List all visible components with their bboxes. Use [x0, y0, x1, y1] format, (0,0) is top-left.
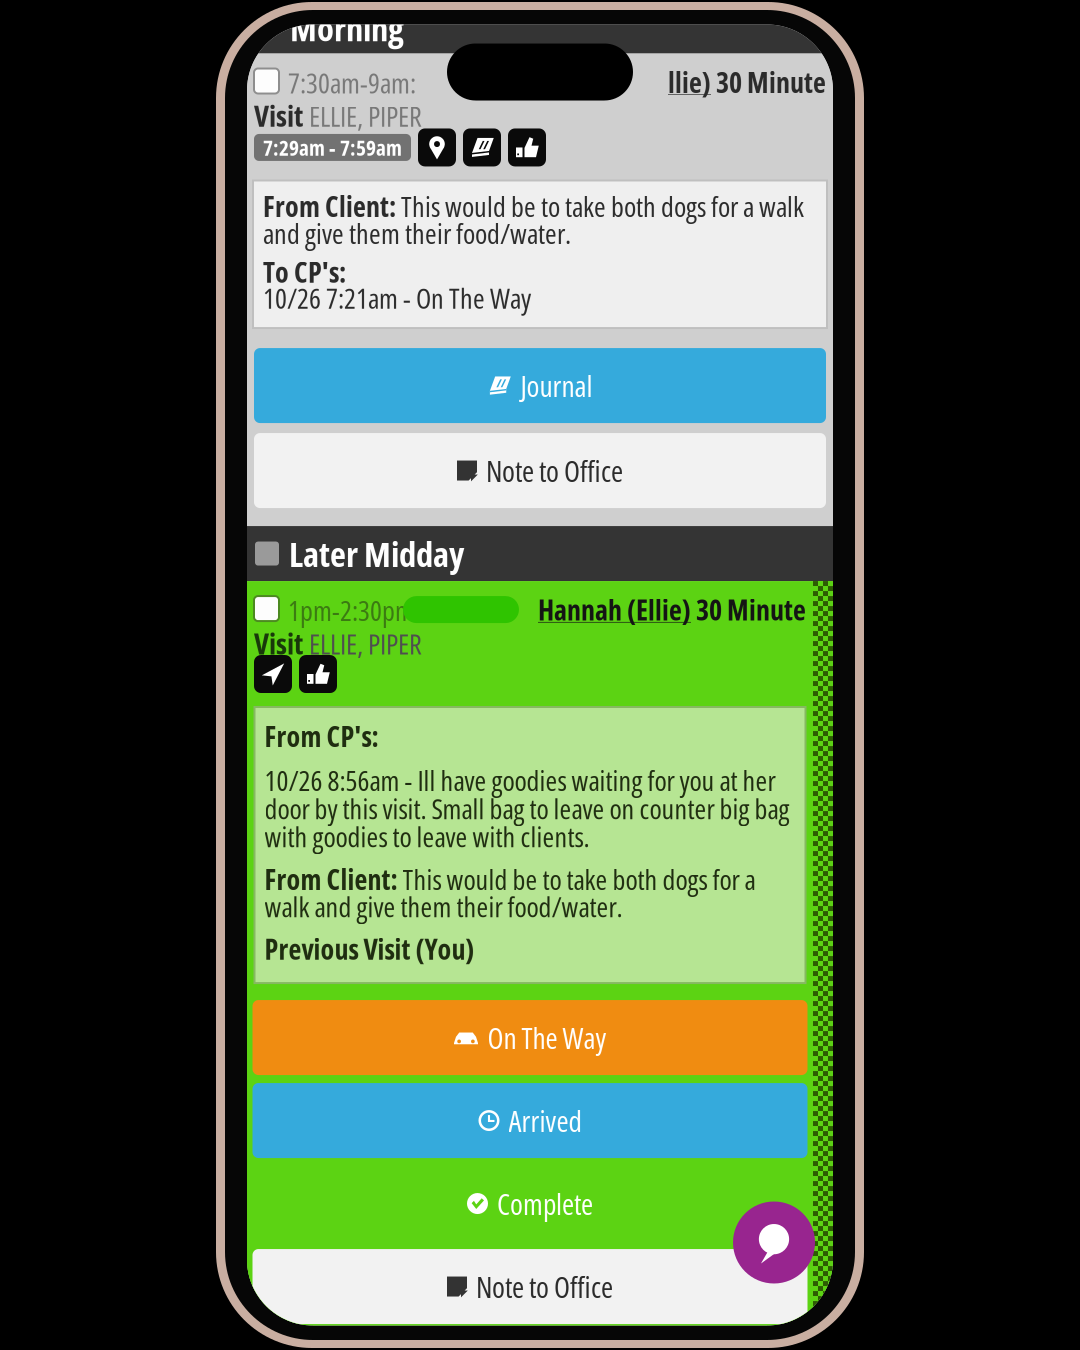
button[interactable]: Chat support [733, 1201, 815, 1283]
staticText: Journal [520, 366, 592, 405]
staticText: To CP's: [263, 253, 346, 291]
staticText: Complete [497, 1184, 593, 1223]
staticText: 1pm-2:30pm: [288, 591, 420, 629]
button[interactable]: On The Way [252, 1000, 807, 1075]
staticText: 7:29am - 7:59am [263, 133, 402, 162]
button[interactable]: Complete [252, 1166, 807, 1241]
staticText: Visit [254, 623, 303, 663]
staticText: From CP's: [264, 717, 378, 755]
staticText: From Client: This would be to take both … [264, 861, 755, 925]
button[interactable]: Journal [254, 348, 826, 423]
staticText: ELLIE, PIPER [309, 97, 422, 135]
staticText: Previous Visit (You) [264, 930, 474, 968]
staticText: 7:30am-9am: [288, 63, 421, 102]
button[interactable]: Open map [418, 128, 456, 166]
staticText: llie) 30 Minute [668, 63, 826, 101]
staticText: Visit [254, 95, 303, 135]
staticText: Note to Office [486, 451, 623, 490]
staticText: Arrived [508, 1101, 581, 1140]
button[interactable]: Arrived [252, 1083, 807, 1158]
staticText: Morning [290, 4, 404, 51]
button[interactable]: Note to Office [254, 433, 826, 508]
button[interactable]: Journal [463, 128, 501, 166]
staticText: ELLIE, PIPER [309, 624, 422, 663]
staticText: Note to Office [476, 1267, 613, 1306]
button[interactable]: Thumbs up [299, 655, 337, 693]
staticText: From Client: This would be to take both … [263, 187, 804, 252]
staticText: 10/26 8:56am - Ill have goodies waiting … [264, 761, 789, 856]
staticText: Later Midday [289, 530, 464, 577]
button[interactable]: Directions [254, 655, 292, 693]
staticText: 10/26 7:21am - On The Way [263, 279, 531, 317]
staticText: On The Way [487, 1018, 606, 1057]
staticText: Hannah (Ellie) 30 Minute [538, 591, 806, 628]
button[interactable]: Thumbs up [508, 128, 546, 166]
button[interactable]: Note to Office [252, 1249, 807, 1324]
